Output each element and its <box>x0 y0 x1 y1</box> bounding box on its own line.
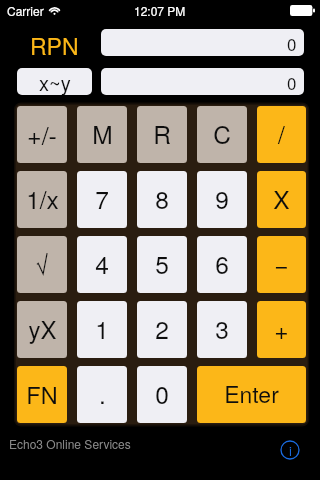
staticText: i <box>289 441 292 460</box>
staticText: Echo3 Online Services <box>9 435 131 452</box>
staticText: FN <box>26 377 58 411</box>
staticText: +/- <box>27 116 57 152</box>
staticText: 2 <box>155 311 169 346</box>
button[interactable]: FN <box>17 366 67 423</box>
staticText: 12:07 PM <box>134 2 186 19</box>
button[interactable]: Enter <box>197 366 306 423</box>
staticText: R <box>153 116 171 151</box>
staticText: . <box>99 376 106 411</box>
button[interactable]: Info <box>280 440 300 460</box>
button[interactable]: 2 <box>137 301 187 358</box>
staticText: 1 <box>95 311 109 346</box>
button[interactable]: − <box>257 236 306 293</box>
button[interactable]: 5 <box>137 236 187 293</box>
button[interactable]: 0 <box>137 366 187 423</box>
staticText: / <box>278 116 285 151</box>
staticText: 8 <box>155 181 169 216</box>
staticText: 5 <box>155 246 169 281</box>
button[interactable]: 1 <box>77 301 127 358</box>
staticText: √ <box>35 246 49 282</box>
staticText: 0 <box>155 376 169 411</box>
staticText: RPN <box>30 29 79 56</box>
button[interactable]: M <box>77 106 127 163</box>
button[interactable]: +/- <box>17 106 67 163</box>
button[interactable]: x~y <box>17 68 92 95</box>
button[interactable]: 9 <box>197 171 247 228</box>
button[interactable]: 6 <box>197 236 247 293</box>
staticText: 0 <box>287 31 297 55</box>
staticText: C <box>213 116 231 151</box>
staticText: X <box>273 181 290 216</box>
button[interactable]: 4 <box>77 236 127 293</box>
button[interactable]: √ <box>17 236 67 293</box>
staticText: x~y <box>39 68 71 95</box>
button[interactable]: + <box>257 301 306 358</box>
staticText: 3 <box>215 311 229 346</box>
staticText: − <box>274 246 289 281</box>
staticText: Enter <box>224 377 279 410</box>
staticText: 0 <box>287 70 297 94</box>
button[interactable]: 1/x <box>17 171 67 228</box>
button[interactable]: . <box>77 366 127 423</box>
staticText: yX <box>28 311 57 345</box>
staticText: 7 <box>95 181 109 216</box>
staticText: Carrier <box>7 2 44 19</box>
staticText: 9 <box>215 181 229 216</box>
button[interactable]: C <box>197 106 247 163</box>
staticText: M <box>92 116 113 151</box>
button[interactable]: 3 <box>197 301 247 358</box>
staticText: 6 <box>215 246 229 281</box>
button[interactable]: 8 <box>137 171 187 228</box>
staticText: 4 <box>95 246 109 281</box>
button[interactable]: R <box>137 106 187 163</box>
button[interactable]: X <box>257 171 306 228</box>
button[interactable]: 7 <box>77 171 127 228</box>
staticText: 1/x <box>26 181 59 216</box>
button[interactable]: yX <box>17 301 67 358</box>
button[interactable]: / <box>257 106 306 163</box>
staticText: + <box>274 312 289 347</box>
